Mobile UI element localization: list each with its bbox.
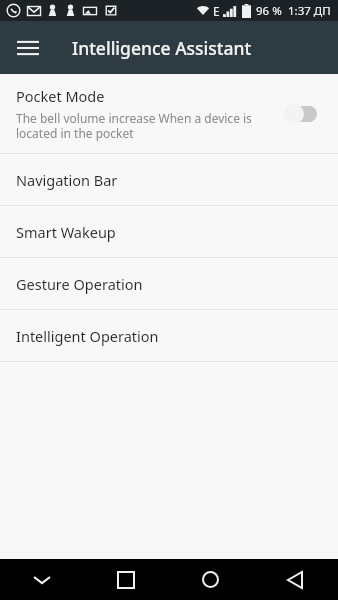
staticText: 1:37 ДП xyxy=(288,3,331,19)
staticText: Gesture Operation xyxy=(16,274,143,294)
button[interactable]: Navigation Bar xyxy=(0,154,338,205)
button[interactable]: Recent apps xyxy=(84,559,168,600)
staticText: Navigation Bar xyxy=(16,170,118,190)
staticText: 96 % xyxy=(256,3,282,19)
button[interactable]: Hide keyboard xyxy=(0,559,84,600)
staticText: Intelligence Assistant xyxy=(72,36,252,60)
staticText: The bell volume increase When a device i… xyxy=(16,110,274,141)
staticText: Pocket Mode xyxy=(16,86,105,106)
button[interactable]: Back xyxy=(252,559,338,600)
button[interactable]: Open navigation menu xyxy=(8,28,48,68)
staticText: Intelligent Operation xyxy=(16,326,159,346)
staticText: Smart Wakeup xyxy=(16,222,116,242)
staticText: E xyxy=(213,3,220,19)
button[interactable]: Home xyxy=(168,559,252,600)
button[interactable]: Pocket Mode xyxy=(0,74,338,153)
button[interactable]: Gesture Operation xyxy=(0,258,338,309)
button[interactable]: Pocket Mode toggle, off xyxy=(284,103,324,125)
button[interactable]: Smart Wakeup xyxy=(0,206,338,257)
button[interactable]: Intelligent Operation xyxy=(0,310,338,361)
